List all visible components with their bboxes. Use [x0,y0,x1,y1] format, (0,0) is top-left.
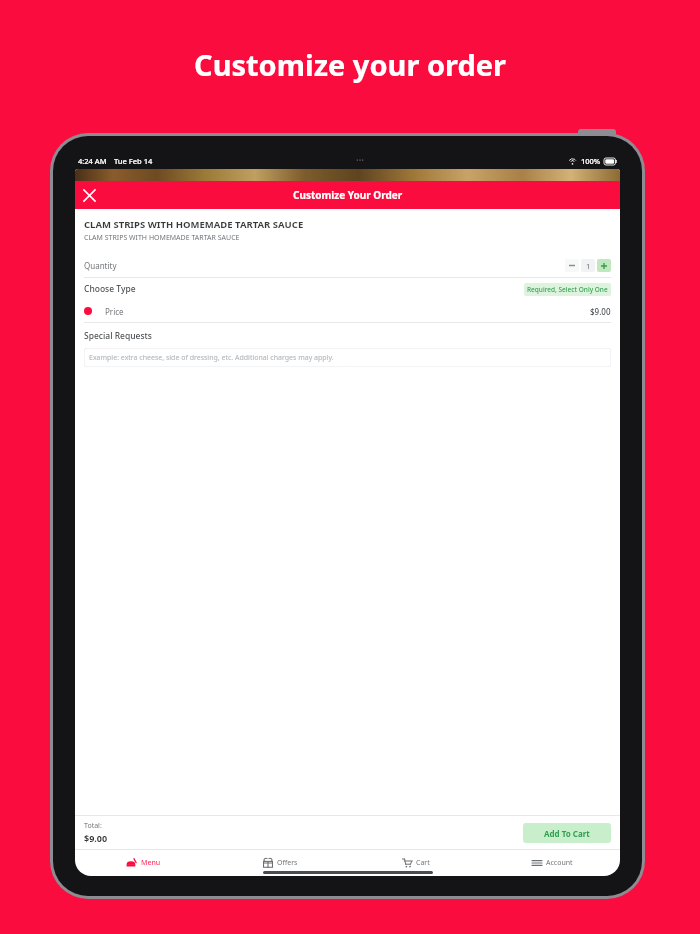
staticText: ••• [356,156,364,166]
staticText: $9.00 [590,306,611,317]
staticText: Price [105,306,124,317]
staticText: Total: [84,821,102,831]
staticText: $9.00 [84,832,108,844]
button[interactable]: Offers [212,850,348,876]
staticText: 1 [586,261,591,271]
staticText: Customize your order [194,45,506,84]
staticText: CLAM STRIPS WITH HOMEMADE TARTAR SAUCE [84,218,304,231]
staticText: Menu [141,858,161,868]
staticText: Account [546,858,573,868]
staticText: Tue Feb 14 [114,156,153,166]
staticText: Offers [277,858,298,868]
staticText: Add To Cart [544,828,590,839]
button[interactable]: Price [84,300,611,322]
staticText: CLAM STRIPS WITH HOMEMADE TARTAR SAUCE [84,233,240,243]
staticText: 4:24 AM [78,156,107,166]
staticText: Example: extra cheese, side of dressing,… [89,353,334,363]
staticText: Special Requests [84,330,152,342]
staticText: 100% [581,156,601,166]
button[interactable]: Account [484,850,620,876]
staticText: Cart [416,858,430,868]
button[interactable]: Example: extra cheese, side of dressing,… [84,348,611,367]
button[interactable]: Cart [348,850,484,876]
staticText: Choose Type [84,283,136,295]
staticText: Customize Your Order [293,188,403,202]
button[interactable]: Close [75,181,103,209]
button[interactable]: Increase quantity [597,259,611,272]
button[interactable]: Decrease quantity [565,259,579,272]
button[interactable]: Add To Cart [523,823,611,843]
staticText: Required, Select Only One [527,285,608,294]
staticText: Quantity [84,260,117,271]
button[interactable]: Menu [75,850,212,876]
